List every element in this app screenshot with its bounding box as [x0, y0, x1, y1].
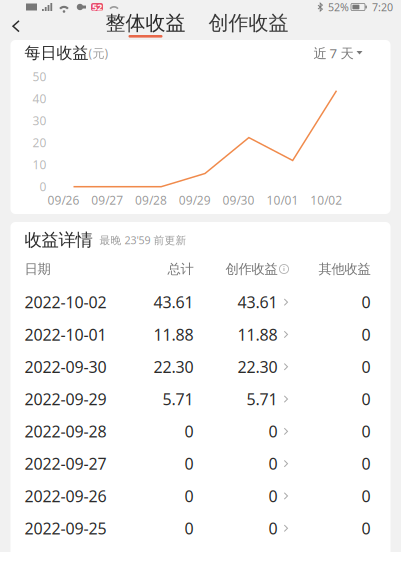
button[interactable]: 2022-10-01 — [10, 318, 390, 351]
staticText: 11.88 — [237, 324, 277, 345]
staticText: 0 — [268, 421, 277, 442]
button[interactable]: 近 7 天 — [313, 40, 362, 66]
button[interactable]: 创作收益 — [214, 14, 283, 40]
staticText: 22.30 — [237, 356, 277, 377]
button[interactable]: 2022-09-27 — [10, 447, 390, 480]
staticText: 11.88 — [153, 324, 193, 345]
staticText: 52 — [92, 1, 102, 13]
staticText: 0 — [361, 453, 370, 474]
staticText: 0 — [184, 453, 193, 474]
staticText: 整体收益 — [105, 11, 185, 35]
staticText: 30 — [32, 113, 46, 129]
staticText: 5.71 — [162, 388, 193, 410]
staticText: 40 — [32, 91, 46, 107]
button[interactable]: 2022-10-02 — [10, 286, 390, 318]
button[interactable]: 2022-09-30 — [10, 351, 390, 383]
staticText: 0 — [361, 485, 370, 506]
staticText: 0 — [39, 179, 46, 195]
staticText: 创作收益 — [225, 261, 277, 277]
staticText: 0 — [361, 421, 370, 442]
staticText: 09/29 — [179, 192, 211, 208]
staticText: 收益详情 — [24, 229, 92, 251]
button[interactable]: Back — [0, 14, 32, 38]
staticText: 0 — [361, 518, 370, 539]
staticText: 2022-09-27 — [24, 453, 106, 474]
staticText: 0 — [361, 291, 370, 313]
staticText: 52% — [328, 0, 349, 14]
staticText: 其他收益 — [318, 261, 370, 277]
button[interactable]: 2022-09-26 — [10, 480, 390, 512]
staticText: 日期 — [24, 261, 50, 277]
button[interactable]: 2022-09-28 — [10, 415, 390, 447]
staticText: 近 7 天 — [313, 44, 353, 62]
button[interactable]: 2022-09-25 — [10, 512, 390, 544]
staticText: 10 — [32, 157, 46, 173]
staticText: 0 — [361, 324, 370, 345]
staticText: 总计 — [167, 261, 193, 277]
button[interactable]: 2022-09-29 — [10, 383, 390, 415]
staticText: 0 — [268, 518, 277, 539]
staticText: 09/28 — [135, 192, 167, 208]
staticText: 0 — [184, 485, 193, 506]
staticText: 0 — [268, 485, 277, 506]
staticText: 50 — [32, 69, 46, 84]
staticText: 43.61 — [237, 291, 277, 313]
staticText: (元) — [88, 45, 108, 61]
staticText: 20 — [32, 135, 46, 151]
staticText: 09/26 — [47, 192, 79, 208]
staticText: 最晚 23'59 前更新 — [99, 233, 186, 247]
staticText: 10/01 — [266, 192, 298, 208]
staticText: 43.61 — [153, 291, 193, 313]
staticText: 09/27 — [91, 192, 123, 208]
staticText: 2022-09-26 — [24, 485, 106, 506]
staticText: 7:20 — [372, 0, 393, 14]
staticText: 2022-10-02 — [24, 291, 106, 313]
staticText: 2022-09-30 — [24, 356, 106, 377]
staticText: 22.30 — [153, 356, 193, 377]
staticText: 0 — [361, 388, 370, 410]
button[interactable]: 整体收益 — [111, 14, 180, 40]
staticText: 2022-09-28 — [24, 421, 106, 442]
staticText: 2022-09-29 — [24, 388, 106, 410]
staticText: 0 — [361, 356, 370, 377]
staticText: 09/30 — [223, 192, 255, 208]
staticText: 2022-10-01 — [24, 324, 106, 345]
staticText: 2022-09-25 — [24, 518, 106, 539]
staticText: 5.71 — [246, 388, 277, 410]
staticText: 每日收益 — [24, 43, 88, 63]
staticText: 0 — [184, 518, 193, 539]
staticText: 创作收益 — [208, 11, 288, 35]
staticText: 0 — [268, 453, 277, 474]
staticText: 0 — [184, 421, 193, 442]
staticText: 10/02 — [310, 192, 342, 208]
